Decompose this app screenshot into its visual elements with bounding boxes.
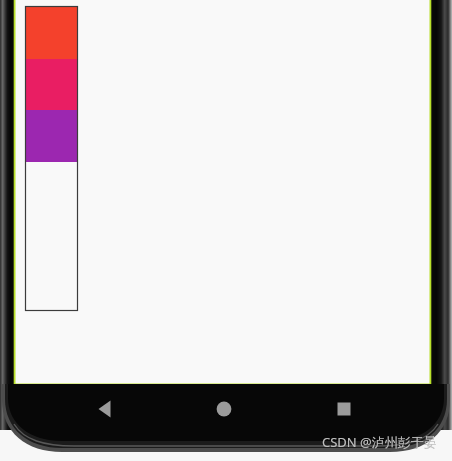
button[interactable]: Home xyxy=(194,386,254,434)
button[interactable] xyxy=(25,6,78,59)
button[interactable] xyxy=(25,110,78,162)
staticText: CSDN @泸州彭于晏 xyxy=(322,433,437,451)
button[interactable]: Recent apps xyxy=(314,386,374,434)
button[interactable]: Back xyxy=(74,386,134,434)
button[interactable] xyxy=(25,59,78,110)
